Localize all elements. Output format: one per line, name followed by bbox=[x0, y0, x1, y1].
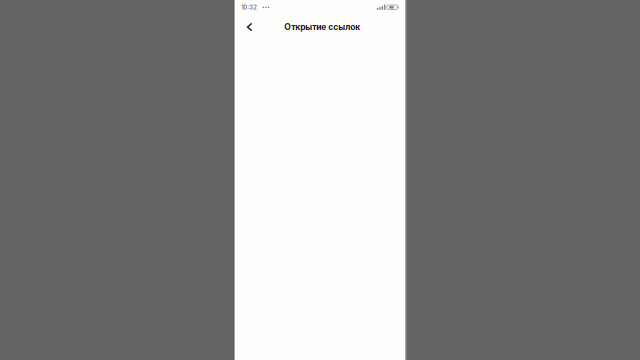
button[interactable]: Назад bbox=[239, 14, 261, 40]
staticText: 10:32 bbox=[241, 4, 257, 11]
staticText: Открытие ссылок bbox=[284, 22, 360, 32]
